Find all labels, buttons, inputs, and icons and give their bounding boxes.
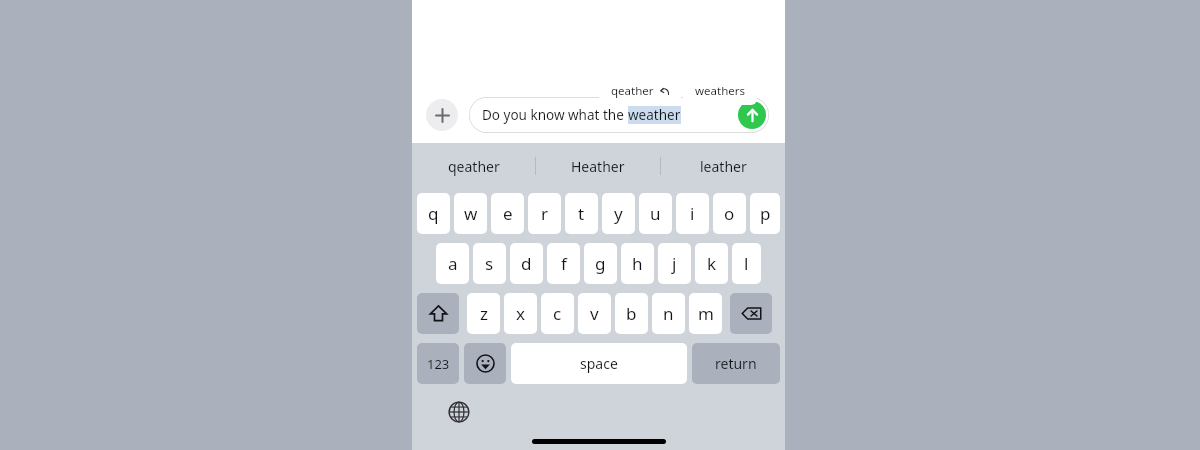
button[interactable]: h [621, 243, 654, 284]
button[interactable]: z [467, 293, 500, 334]
button[interactable]: Emoji [464, 343, 506, 384]
button[interactable]: qeather [412, 143, 535, 189]
button[interactable]: s [473, 243, 506, 284]
staticText: n [663, 302, 674, 325]
button[interactable]: space [511, 343, 687, 384]
staticText: 123 [427, 355, 450, 373]
button[interactable]: o [713, 193, 746, 234]
button[interactable]: y [602, 193, 635, 234]
button[interactable]: m [689, 293, 722, 334]
staticText: m [698, 302, 714, 325]
staticText: s [485, 252, 494, 275]
staticText: weather [628, 106, 681, 124]
staticText: k [707, 252, 717, 275]
button[interactable]: Do you know what the [469, 97, 769, 133]
staticText: a [448, 252, 458, 275]
button[interactable]: x [504, 293, 537, 334]
button[interactable]: v [578, 293, 611, 334]
staticText: f [561, 252, 567, 275]
staticText: j [672, 252, 677, 275]
button[interactable]: Add attachment [426, 99, 458, 131]
button[interactable]: a [436, 243, 469, 284]
button[interactable]: t [565, 193, 598, 234]
staticText: x [516, 302, 525, 325]
button[interactable]: d [510, 243, 543, 284]
staticText: qeather [611, 83, 654, 99]
staticText: Do you know what the [482, 106, 628, 124]
button[interactable]: weathers [683, 76, 757, 105]
button[interactable]: g [584, 243, 617, 284]
button[interactable]: Change keyboard [443, 396, 475, 428]
button[interactable]: Heather [536, 143, 660, 189]
staticText: u [650, 202, 661, 225]
button[interactable]: q [417, 193, 450, 234]
staticText: o [724, 202, 735, 225]
button[interactable]: l [732, 243, 761, 284]
button[interactable]: b [615, 293, 648, 334]
staticText: leather [700, 157, 747, 176]
staticText: e [503, 202, 513, 225]
button[interactable]: u [639, 193, 672, 234]
staticText: g [595, 252, 606, 275]
staticText: weathers [695, 83, 745, 99]
button[interactable]: w [454, 193, 487, 234]
button[interactable]: f [547, 243, 580, 284]
button[interactable]: e [491, 193, 524, 234]
staticText: r [541, 202, 549, 225]
button[interactable]: qeather [599, 76, 681, 105]
button[interactable]: Send [738, 101, 766, 129]
staticText: v [590, 302, 599, 325]
staticText: t [578, 202, 585, 225]
button[interactable]: Backspace [730, 293, 772, 334]
button[interactable]: j [658, 243, 691, 284]
staticText: z [480, 302, 488, 325]
staticText: b [626, 302, 637, 325]
staticText: d [521, 252, 532, 275]
button[interactable]: leather [661, 143, 785, 189]
button[interactable]: 123 [417, 343, 459, 384]
staticText: return [715, 354, 757, 373]
button[interactable]: r [528, 193, 561, 234]
staticText: qeather [448, 157, 500, 176]
staticText: l [744, 252, 749, 275]
button[interactable]: Shift [417, 293, 459, 334]
staticText: space [580, 354, 618, 373]
button[interactable]: p [750, 193, 780, 234]
button[interactable]: i [676, 193, 709, 234]
button[interactable]: k [695, 243, 728, 284]
staticText: i [690, 202, 695, 225]
staticText: h [632, 252, 643, 275]
button[interactable]: return [692, 343, 780, 384]
button[interactable]: c [541, 293, 574, 334]
staticText: q [428, 202, 439, 225]
staticText: p [760, 202, 771, 225]
staticText: Heather [571, 157, 625, 176]
button[interactable]: n [652, 293, 685, 334]
staticText: w [464, 202, 478, 225]
staticText: y [614, 202, 623, 225]
staticText: c [553, 302, 562, 325]
